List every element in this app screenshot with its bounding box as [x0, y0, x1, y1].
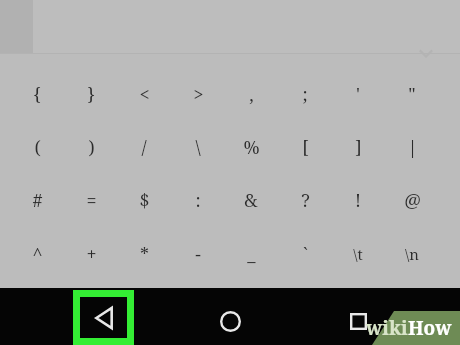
staticText: }: [87, 82, 95, 107]
staticText: ^: [32, 242, 43, 267]
button[interactable]: Recent apps: [338, 301, 378, 341]
staticText: #: [32, 188, 43, 213]
staticText: {: [33, 82, 41, 107]
button[interactable]: &: [224, 174, 278, 226]
staticText: |: [407, 135, 418, 160]
staticText: -: [195, 242, 201, 267]
button[interactable]: (: [10, 121, 64, 173]
staticText: %: [243, 135, 260, 160]
button[interactable]: ": [385, 68, 439, 120]
button[interactable]: <: [117, 68, 171, 120]
button[interactable]: ?: [278, 174, 332, 226]
staticText: >: [193, 82, 204, 107]
staticText: _: [247, 242, 256, 267]
staticText: +: [86, 242, 97, 267]
button[interactable]: !: [331, 174, 385, 226]
button[interactable]: *: [117, 228, 171, 280]
button[interactable]: {: [10, 68, 64, 120]
staticText: ?: [301, 188, 310, 213]
button[interactable]: %: [224, 121, 278, 173]
staticText: /: [141, 135, 147, 160]
button[interactable]: ]: [331, 121, 385, 173]
button[interactable]: ;: [278, 68, 332, 120]
button[interactable]: \: [171, 121, 225, 173]
staticText: $: [139, 188, 150, 213]
staticText: \: [195, 135, 201, 160]
staticText: @: [404, 188, 421, 213]
staticText: [: [302, 135, 309, 160]
staticText: :: [195, 188, 201, 213]
button[interactable]: _: [224, 228, 278, 280]
button[interactable]: `: [278, 228, 332, 280]
button[interactable]: +: [64, 228, 118, 280]
staticText: wiki: [366, 315, 408, 341]
button[interactable]: $: [117, 174, 171, 226]
staticText: =: [86, 188, 97, 213]
button[interactable]: |: [385, 121, 439, 173]
button[interactable]: @: [385, 174, 439, 226]
button[interactable]: }: [64, 68, 118, 120]
staticText: How: [408, 315, 452, 341]
staticText: ]: [355, 135, 362, 160]
staticText: ): [88, 135, 95, 160]
button[interactable]: >: [171, 68, 225, 120]
staticText: &: [244, 188, 258, 213]
staticText: ;: [302, 82, 308, 107]
staticText: ': [356, 82, 360, 107]
button[interactable]: ': [331, 68, 385, 120]
button[interactable]: :: [171, 174, 225, 226]
staticText: `: [303, 242, 308, 267]
staticText: ": [408, 82, 416, 107]
button[interactable]: \t: [331, 228, 385, 280]
button[interactable]: /: [117, 121, 171, 173]
button[interactable]: \n: [385, 228, 439, 280]
button[interactable]: Back: [80, 297, 127, 338]
button[interactable]: [: [278, 121, 332, 173]
staticText: !: [355, 188, 361, 213]
staticText: \t: [353, 244, 363, 264]
staticText: \n: [405, 244, 419, 264]
button[interactable]: ^: [10, 228, 64, 280]
button[interactable]: -: [171, 228, 225, 280]
staticText: (: [34, 135, 41, 160]
button[interactable]: Home: [210, 301, 250, 341]
button[interactable]: #: [10, 174, 64, 226]
button[interactable]: =: [64, 174, 118, 226]
staticText: *: [140, 242, 149, 267]
staticText: <: [139, 82, 150, 107]
staticText: ,: [249, 82, 254, 107]
button[interactable]: ,: [224, 68, 278, 120]
button[interactable]: ): [64, 121, 118, 173]
